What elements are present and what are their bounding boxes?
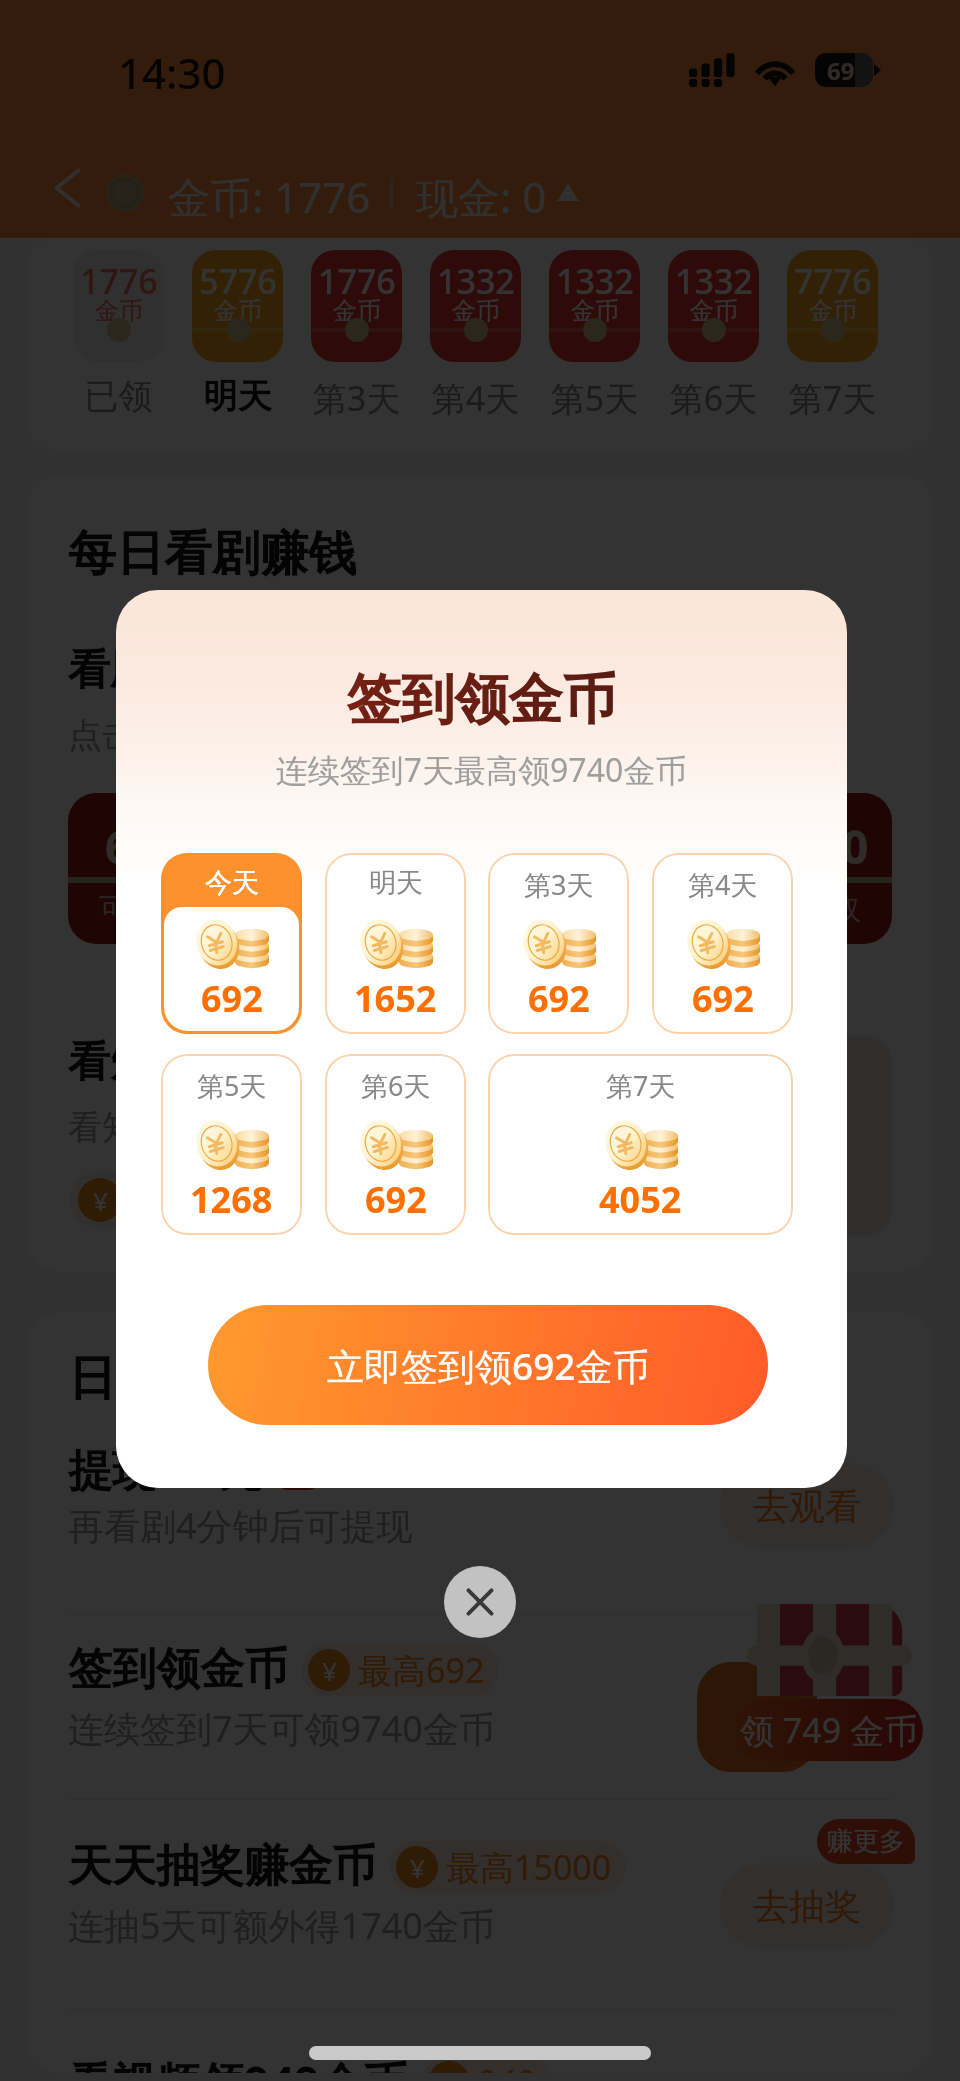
staticText: 第5天	[197, 1067, 267, 1104]
staticText: 692	[365, 1175, 427, 1224]
button[interactable]: 第7天	[488, 1054, 793, 1235]
button[interactable]: 天天抽奖赚金币	[28, 1825, 932, 2011]
staticText: 最高692	[358, 1647, 485, 1693]
staticText: 连续签到7天最高领9740金币	[116, 748, 847, 792]
staticText: 现金: 0	[416, 168, 547, 225]
staticText: 最高15000	[446, 1844, 612, 1890]
staticText: 692	[528, 974, 590, 1023]
staticText: 可领取	[99, 890, 189, 928]
button[interactable]: 第3天	[488, 853, 629, 1034]
staticText: 看剧得金币	[68, 644, 278, 697]
button[interactable]: 第5天	[161, 1054, 302, 1235]
staticText: 明天	[182, 375, 293, 418]
staticText: 日常任务	[68, 1349, 260, 1409]
staticText: 提现0.3元	[68, 1439, 263, 1499]
staticText: 949	[478, 2059, 537, 2073]
staticText: ¥	[322, 1653, 337, 1688]
staticText: 第6天	[658, 375, 769, 421]
button[interactable]: 提现0.3元	[28, 1425, 932, 1615]
staticText: 600	[105, 815, 184, 878]
button[interactable]: 第4天	[652, 853, 793, 1034]
staticText: 1332	[675, 258, 753, 304]
staticText: 可领取	[771, 890, 861, 928]
staticText: 5776	[199, 258, 277, 304]
staticText: 1200	[259, 815, 365, 878]
staticText: 明天	[369, 866, 423, 900]
staticText: 692	[201, 974, 263, 1023]
staticText: 今天	[205, 866, 259, 900]
button[interactable]: Close	[444, 1566, 516, 1638]
staticText: 2400	[595, 815, 701, 878]
staticText: 金币	[214, 296, 262, 326]
staticText: 签到领金币	[68, 1642, 288, 1697]
staticText: 1332	[437, 258, 515, 304]
staticText: 每日看剧赚钱	[68, 524, 356, 584]
staticText: 金币	[571, 296, 619, 326]
staticText: 第4天	[688, 866, 758, 903]
button[interactable]: 第6天	[325, 1054, 466, 1235]
staticText: 第4天	[420, 375, 531, 421]
staticText: 第6天	[361, 1067, 431, 1104]
staticText: 可领取	[267, 890, 357, 928]
staticText: 第3天	[301, 375, 412, 421]
staticText: 领 749 金币	[740, 1707, 919, 1753]
staticText: ¥	[410, 1850, 425, 1885]
staticText: 签到领金币	[116, 666, 847, 734]
staticText: 7776	[794, 258, 872, 304]
staticText: 692	[692, 974, 754, 1023]
staticText: 最高3000	[132, 1178, 270, 1222]
staticText: 1776	[80, 258, 158, 304]
staticText: 立即签到领692金币	[327, 1340, 650, 1391]
staticText: 1776	[318, 258, 396, 304]
staticText: 去抽奖	[753, 1884, 861, 1929]
button[interactable]: 明天	[325, 853, 466, 1034]
button[interactable]: Back	[40, 160, 96, 216]
staticText: 第3天	[524, 866, 594, 903]
staticText: 0.3元	[331, 1443, 423, 1495]
button[interactable]: 看视频领949金币	[28, 2038, 932, 2073]
staticText: 4052	[599, 1175, 682, 1224]
staticText: 看短剧得现金	[68, 1036, 320, 1089]
staticText: 第5天	[539, 375, 650, 421]
staticText: 金币	[95, 296, 143, 326]
staticText: 看视频领949金币	[68, 2052, 408, 2073]
staticText: 第7天	[777, 375, 888, 421]
button[interactable]: 今天	[161, 853, 302, 1034]
staticText: 3000	[763, 815, 869, 878]
staticText: 1332	[556, 258, 634, 304]
button[interactable]: 签到领金币	[28, 1628, 932, 1800]
staticText: 69	[827, 54, 855, 87]
staticText: 点击立即观看得金币	[68, 714, 374, 757]
staticText: 连抽5天可额外得1740金币	[68, 1901, 495, 1950]
staticText: 去观看	[753, 1484, 861, 1529]
staticText: 金币	[809, 296, 857, 326]
staticText: 金币	[690, 296, 738, 326]
staticText: 1800	[427, 815, 533, 878]
staticText: 第7天	[606, 1067, 676, 1104]
staticText: 赚更多	[827, 1825, 905, 1858]
staticText: 今天	[205, 866, 259, 900]
button[interactable]: 立即签到领692金币	[208, 1305, 768, 1425]
button[interactable]: 去观看	[719, 1463, 894, 1549]
staticText: 再看剧4分钟后可提现	[68, 1501, 413, 1550]
staticText: 可领取	[603, 890, 693, 928]
staticText: 已领	[63, 375, 174, 418]
staticText: 连续签到7天可领9740金币	[68, 1704, 495, 1753]
staticText: 金币: 1776	[168, 168, 371, 225]
staticText: ¥	[93, 1183, 108, 1218]
staticText: 金币	[452, 296, 500, 326]
staticText: 天天抽奖赚金币	[68, 1839, 376, 1894]
staticText: 金币	[333, 296, 381, 326]
staticText: 可领取	[435, 890, 525, 928]
staticText: 看知名短剧领现金奖励	[68, 1106, 408, 1149]
staticText: 1652	[354, 974, 437, 1023]
staticText: 14:30	[118, 44, 226, 101]
staticText: 1268	[190, 1175, 273, 1224]
button[interactable]: 去抽奖	[719, 1863, 894, 1949]
